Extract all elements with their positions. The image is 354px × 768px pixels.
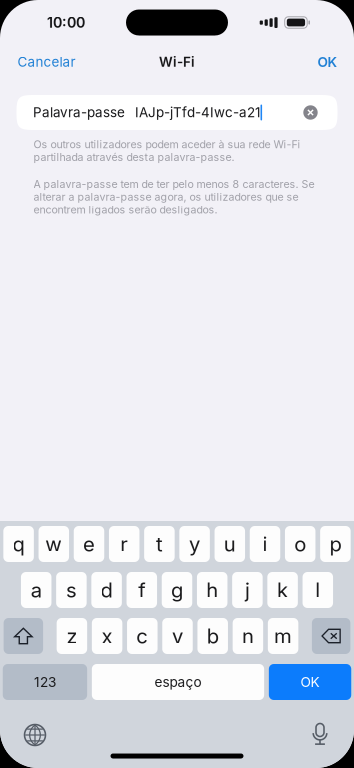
button[interactable]: OK (317, 47, 337, 77)
button[interactable]: d (91, 572, 122, 608)
button[interactable]: 123 (3, 664, 87, 700)
staticText: g (171, 578, 183, 602)
button[interactable]: w (38, 526, 69, 562)
staticText: t (156, 532, 163, 556)
button[interactable]: Mudar idioma (18, 709, 52, 745)
staticText: x (102, 624, 113, 648)
button[interactable]: u (214, 526, 245, 562)
staticText: Os outros utilizadores podem aceder à su… (33, 138, 300, 164)
button[interactable]: Shift (4, 618, 43, 654)
staticText: r (120, 532, 128, 556)
staticText: z (66, 624, 77, 648)
staticText: n (242, 624, 254, 648)
staticText: Wi-Fi (159, 54, 195, 70)
staticText: l (315, 578, 320, 602)
button[interactable]: j (232, 572, 263, 608)
button[interactable]: Ditado (303, 709, 337, 745)
button[interactable]: z (57, 618, 87, 654)
button[interactable]: OK (269, 664, 351, 700)
staticText: w (45, 532, 62, 556)
staticText: o (294, 532, 306, 556)
staticText: s (66, 578, 77, 602)
staticText: v (172, 624, 183, 648)
button[interactable]: f (126, 572, 157, 608)
staticText: Palavra-passe (33, 104, 125, 121)
button[interactable]: Cancelar (17, 47, 75, 77)
button[interactable]: e (74, 526, 104, 562)
button[interactable]: k (267, 572, 298, 608)
button[interactable]: y (179, 526, 210, 562)
staticText: e (83, 532, 95, 556)
staticText: m (274, 624, 292, 648)
button[interactable]: s (56, 572, 87, 608)
staticText: q (13, 532, 25, 556)
staticText: c (136, 624, 148, 648)
button[interactable]: a (21, 572, 51, 608)
button[interactable]: g (162, 572, 192, 608)
button[interactable]: r (109, 526, 139, 562)
button[interactable]: c (127, 618, 157, 654)
staticText: b (207, 624, 219, 648)
staticText: j (245, 578, 250, 602)
staticText: y (189, 532, 200, 556)
staticText: d (101, 578, 113, 602)
staticText: espaço (154, 674, 201, 690)
button[interactable]: t (144, 526, 175, 562)
staticText: u (224, 532, 236, 556)
staticText: k (277, 578, 288, 602)
button[interactable]: i (250, 526, 280, 562)
button[interactable]: l (302, 572, 333, 608)
button[interactable]: h (197, 572, 227, 608)
staticText: A palavra-passe tem de ter pelo menos 8 … (33, 178, 314, 216)
button[interactable]: v (162, 618, 193, 654)
button[interactable]: espaço (92, 664, 264, 700)
button[interactable]: b (197, 618, 228, 654)
staticText: Cancelar (17, 54, 75, 70)
button[interactable]: q (3, 526, 34, 562)
button[interactable]: p (320, 526, 351, 562)
staticText: 10:00 (47, 14, 85, 31)
button[interactable]: m (268, 618, 298, 654)
staticText: 123 (34, 674, 56, 690)
button[interactable]: n (233, 618, 263, 654)
staticText: i (262, 532, 267, 556)
staticText: p (329, 532, 341, 556)
button[interactable]: Apagar (312, 618, 350, 654)
staticText: IAJp-jTfd-4Iwc-a21 (135, 104, 260, 121)
staticText: OK (317, 54, 337, 70)
staticText: h (206, 578, 218, 602)
button[interactable]: o (285, 526, 315, 562)
staticText: f (138, 578, 145, 602)
staticText: a (31, 578, 42, 602)
button[interactable]: Limpar texto (296, 97, 324, 127)
staticText: OK (301, 674, 320, 690)
button[interactable]: x (92, 618, 122, 654)
